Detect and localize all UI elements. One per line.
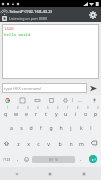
staticText: q xyxy=(4,110,8,117)
button[interactable]: v xyxy=(43,135,54,151)
staticText: EN · SK xyxy=(49,158,59,162)
button[interactable]: Backspace xyxy=(87,135,101,151)
staticText: 4 xyxy=(37,106,39,110)
button[interactable]: Send xyxy=(87,82,99,94)
staticText: . xyxy=(80,156,82,163)
staticText: m xyxy=(79,140,84,147)
button[interactable]: k xyxy=(76,120,86,135)
button[interactable]: f xyxy=(36,120,46,135)
button[interactable]: 2 xyxy=(11,105,21,120)
button[interactable]: a xyxy=(6,120,16,135)
button[interactable]: s xyxy=(16,120,26,135)
staticText: j xyxy=(70,124,72,131)
button[interactable]: n xyxy=(65,135,76,151)
button[interactable]: 4 xyxy=(31,105,41,120)
staticText: , xyxy=(17,156,19,163)
staticText: 1A2B xyxy=(4,26,14,31)
staticText: 0 xyxy=(97,106,99,110)
staticText: ?123 xyxy=(3,157,11,162)
button[interactable]: x xyxy=(23,135,33,151)
button[interactable]: Keyboard tool 3 xyxy=(44,95,58,105)
button[interactable]: d xyxy=(26,120,36,135)
staticText: d xyxy=(29,124,33,131)
staticText: w xyxy=(14,110,19,117)
button[interactable]: Period xyxy=(76,151,85,167)
staticText: … xyxy=(78,97,82,104)
staticText: TelnetP (192.168.43.2) xyxy=(9,9,52,15)
staticText: h xyxy=(59,124,63,131)
staticText: k xyxy=(80,124,83,131)
button[interactable]: b xyxy=(54,135,65,151)
button[interactable]: Comma xyxy=(13,151,22,167)
staticText: 2 xyxy=(17,106,19,110)
button[interactable]: z xyxy=(13,135,23,151)
staticText: 9 xyxy=(87,106,89,110)
staticText: i xyxy=(75,110,77,117)
staticText: y xyxy=(55,110,58,117)
staticText: 3 xyxy=(27,106,29,110)
staticText: hello world xyxy=(4,32,31,37)
staticText: Listening on port 8080 xyxy=(9,16,48,21)
button[interactable]: Home xyxy=(33,167,67,180)
button[interactable]: ?123 xyxy=(0,151,13,167)
button[interactable]: Voice input xyxy=(87,95,101,105)
staticText: 8 xyxy=(77,106,79,110)
button[interactable]: 8 xyxy=(71,105,81,120)
staticText: n xyxy=(69,140,73,147)
button[interactable]: Shift xyxy=(0,135,13,151)
staticText: r xyxy=(35,110,38,117)
staticText: t xyxy=(45,110,47,117)
button[interactable]: Space xyxy=(32,156,75,163)
button[interactable]: j xyxy=(66,120,76,135)
staticText: f xyxy=(40,124,42,131)
staticText: a xyxy=(10,124,13,131)
button[interactable]: Emoji xyxy=(22,151,31,167)
button[interactable]: Settings xyxy=(86,8,99,21)
button[interactable]: Back xyxy=(0,167,33,180)
staticText: 6 xyxy=(57,106,59,110)
button[interactable]: Enter xyxy=(85,151,101,167)
staticText: x xyxy=(27,140,30,147)
button[interactable]: g xyxy=(46,120,56,135)
button[interactable]: More xyxy=(73,95,87,105)
button[interactable]: l xyxy=(86,120,96,135)
button[interactable]: 9 xyxy=(81,105,91,120)
staticText: g xyxy=(49,124,53,131)
staticText: e xyxy=(25,110,28,117)
staticText: o xyxy=(84,110,88,117)
button[interactable]: h xyxy=(56,120,66,135)
staticText: type HEX command xyxy=(4,86,41,91)
button[interactable]: 6 xyxy=(51,105,61,120)
button[interactable]: 7 xyxy=(61,105,71,120)
button[interactable]: Keyboard tool 4 xyxy=(58,95,72,105)
button[interactable]: 5 xyxy=(41,105,51,120)
staticText: v xyxy=(47,140,50,147)
staticText: p xyxy=(94,110,98,117)
button[interactable]: Keyboard tool 1 xyxy=(15,95,30,105)
button[interactable]: 1 xyxy=(0,105,11,120)
button[interactable]: type HEX command xyxy=(2,83,87,93)
staticText: z xyxy=(17,140,20,147)
staticText: c xyxy=(37,140,40,147)
staticText: 7 xyxy=(67,106,69,110)
staticText: 5 xyxy=(47,106,49,110)
button[interactable]: Google xyxy=(0,95,15,105)
staticText: u xyxy=(64,110,68,117)
staticText: s xyxy=(20,124,23,131)
staticText: 1 xyxy=(7,106,9,110)
staticText: b xyxy=(58,140,62,147)
button[interactable]: 0 xyxy=(91,105,101,120)
button[interactable]: Recents xyxy=(67,167,101,180)
staticText: l xyxy=(90,124,92,131)
button[interactable]: c xyxy=(33,135,43,151)
button[interactable]: 3 xyxy=(21,105,31,120)
button[interactable]: m xyxy=(76,135,87,151)
button[interactable]: Keyboard tool 2 xyxy=(30,95,44,105)
